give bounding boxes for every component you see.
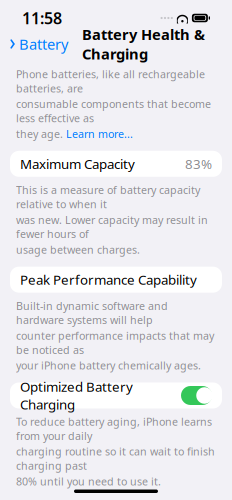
staticText: This is a measure of battery capacity re… xyxy=(16,183,200,211)
staticText: Maximum Capacity xyxy=(20,155,135,173)
button[interactable]: Maximum Capacity xyxy=(10,151,222,177)
staticText: counter performance impacts that may be … xyxy=(16,328,214,357)
button[interactable]: Peak Performance Capability xyxy=(10,267,222,293)
staticText: was new. Lower capacity may result in fe… xyxy=(16,213,208,241)
staticText: Optimized Battery Charging xyxy=(20,378,133,413)
staticText: Battery xyxy=(19,34,68,54)
staticText: 11:58 xyxy=(22,7,62,29)
staticText: your iPhone battery chemically ages. xyxy=(16,358,201,372)
staticText: Learn more... xyxy=(66,127,133,141)
staticText: Peak Performance Capability xyxy=(20,271,197,288)
staticText: charging routine so it can wait to finis… xyxy=(16,444,215,473)
button[interactable]: Optimized Battery Charging xyxy=(10,382,222,408)
staticText: usage between charges. xyxy=(16,242,140,257)
button[interactable]: Battery xyxy=(9,30,72,58)
staticText: they age. xyxy=(16,127,66,141)
staticText: 83% xyxy=(185,155,212,173)
staticText: To reduce battery aging, iPhone learns f… xyxy=(16,414,212,443)
staticText: Built-in dynamic software and hardware s… xyxy=(16,299,168,327)
button[interactable]: Learn more... xyxy=(66,127,133,141)
staticText: 80% until you need to use it. xyxy=(16,474,161,488)
staticText: consumable components that become less e… xyxy=(16,97,211,125)
staticText: Phone batteries, like all rechargeable b… xyxy=(16,67,205,95)
staticText: Battery Health & Charging xyxy=(82,24,205,63)
